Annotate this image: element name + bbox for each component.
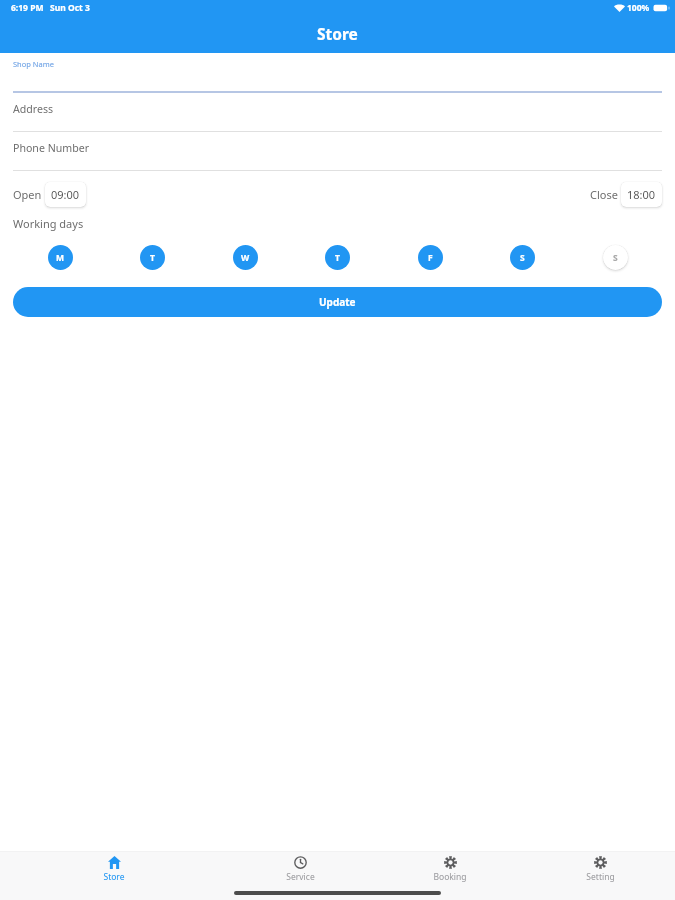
staticText: T bbox=[150, 252, 155, 264]
button[interactable]: T bbox=[140, 245, 165, 270]
staticText: Shop Name bbox=[13, 59, 55, 69]
button[interactable]: Phone Number bbox=[0, 131, 675, 170]
button[interactable]: Service bbox=[260, 851, 340, 900]
button[interactable]: Address bbox=[0, 92, 675, 131]
staticText: Service bbox=[286, 871, 315, 883]
staticText: 09:00 bbox=[51, 187, 80, 202]
button[interactable]: S bbox=[603, 245, 628, 270]
staticText: Phone Number bbox=[13, 141, 90, 155]
button[interactable]: F bbox=[418, 245, 443, 270]
button[interactable]: Setting bbox=[560, 851, 640, 900]
staticText: F bbox=[428, 252, 433, 264]
staticText: 18:00 bbox=[627, 187, 656, 202]
staticText: Sun Oct 3 bbox=[50, 2, 90, 14]
staticText: 6:19 PM bbox=[11, 2, 44, 14]
staticText: S bbox=[613, 252, 618, 264]
button[interactable]: W bbox=[233, 245, 258, 270]
staticText: Open bbox=[13, 187, 42, 202]
staticText: S bbox=[520, 252, 525, 264]
button[interactable]: Open bbox=[13, 182, 86, 207]
staticText: Working days bbox=[13, 216, 84, 231]
button[interactable]: T bbox=[325, 245, 350, 270]
button[interactable]: Close bbox=[590, 182, 662, 207]
button[interactable]: Booking bbox=[410, 851, 490, 900]
button[interactable]: S bbox=[510, 245, 535, 270]
other: Battery 100 percent bbox=[653, 4, 670, 12]
staticText: Booking bbox=[433, 871, 467, 883]
staticText: T bbox=[335, 252, 340, 264]
button[interactable]: Shop Name bbox=[0, 53, 675, 92]
button[interactable]: Store bbox=[74, 851, 154, 900]
staticText: Store bbox=[103, 871, 125, 883]
staticText: Setting bbox=[586, 871, 615, 883]
button[interactable]: 18:00 bbox=[621, 182, 662, 207]
staticText: 100% bbox=[627, 2, 650, 14]
button[interactable]: Update bbox=[13, 287, 662, 317]
staticText: Close bbox=[590, 187, 618, 202]
button[interactable]: M bbox=[48, 245, 73, 270]
staticText: Address bbox=[13, 102, 54, 116]
staticText: Update bbox=[319, 295, 356, 309]
staticText: M bbox=[56, 252, 65, 264]
staticText: W bbox=[241, 252, 250, 264]
staticText: Store bbox=[317, 23, 358, 44]
button[interactable]: 09:00 bbox=[45, 182, 86, 207]
